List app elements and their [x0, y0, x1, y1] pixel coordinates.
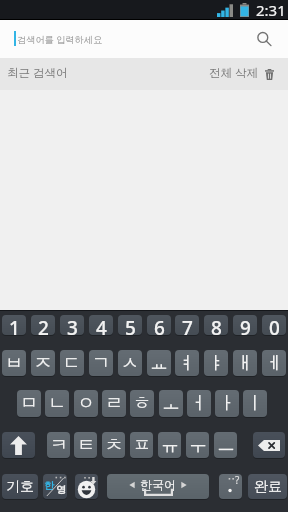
staticText: ㅑ [207, 352, 225, 375]
staticText: ㅠ [161, 434, 179, 457]
staticText: ㅇ [77, 392, 95, 415]
button[interactable]: ㅋ [47, 432, 70, 458]
staticText: 완료 [254, 478, 282, 496]
button[interactable]: ㄴ [45, 390, 69, 417]
staticText: 최근 검색어 [7, 65, 68, 81]
staticText: ㅈ [34, 352, 52, 375]
button[interactable]: ㅌ [74, 432, 97, 458]
button[interactable]: back [253, 432, 285, 458]
staticText: ㄱ [92, 352, 110, 375]
button[interactable]: shift [2, 432, 35, 458]
button[interactable]: ㅓ [187, 390, 211, 417]
staticText: 4 [96, 315, 107, 335]
button[interactable]: ㅍ [130, 432, 153, 458]
staticText: ㅁ [20, 392, 38, 415]
staticText: ㅂ [5, 352, 23, 375]
staticText: ㅔ [265, 352, 283, 375]
staticText: 8 [211, 315, 222, 335]
staticText: 2:31 [256, 0, 286, 20]
staticText: 영 [56, 483, 66, 496]
staticText: ㅊ [105, 434, 123, 457]
button[interactable]: ㅏ [215, 390, 239, 417]
button[interactable]: ㅗ [159, 390, 183, 417]
button[interactable]: ㅛ [147, 350, 171, 376]
staticText: ㅡ [217, 434, 235, 457]
button[interactable]: ㅁ [17, 390, 41, 417]
staticText: 9 [240, 315, 251, 335]
button[interactable]: ㅠ [158, 432, 181, 458]
button[interactable]: ㄹ [102, 390, 126, 417]
button[interactable]: ㅎ [130, 390, 154, 417]
button[interactable]: ㅡ [214, 432, 237, 458]
button[interactable]: ㅐ [233, 350, 257, 376]
staticText: ㅏ [218, 392, 236, 415]
staticText: ㅓ [190, 392, 208, 415]
staticText: 6 [154, 315, 165, 335]
button[interactable]: ㅈ [31, 350, 55, 376]
staticText: ㅣ [246, 392, 264, 415]
button[interactable]: 2 [31, 315, 55, 335]
staticText: ㅅ [121, 352, 139, 375]
staticText: ㄹ [105, 392, 123, 415]
staticText: ㅋ [50, 434, 68, 457]
button[interactable]: hanyoung [43, 474, 67, 499]
staticText: 한 [44, 479, 54, 492]
button[interactable]: emoji [75, 474, 98, 499]
button[interactable]: ㅜ [186, 432, 209, 458]
button[interactable]: ㄷ [60, 350, 84, 376]
button[interactable]: 1 [2, 315, 26, 335]
staticText: ㅌ [77, 434, 95, 457]
button[interactable]: 전체 삭제 [201, 66, 288, 82]
staticText: ㅎ [133, 392, 151, 415]
staticText: 2 [38, 315, 49, 335]
staticText: ㄷ [63, 352, 81, 375]
button[interactable]: ㅣ [243, 390, 267, 417]
button[interactable]: ㅂ [2, 350, 26, 376]
staticText: ㅐ [236, 352, 254, 375]
button[interactable]: space [107, 474, 209, 499]
staticText: 5 [125, 315, 136, 335]
staticText: ㅛ [150, 352, 168, 375]
staticText: 기호 [6, 478, 34, 496]
staticText: ㅗ [162, 392, 180, 415]
button[interactable]: 완료 [248, 474, 287, 499]
staticText: 0 [269, 315, 280, 335]
button[interactable]: 7 [175, 315, 199, 335]
staticText: ㅍ [133, 434, 151, 457]
staticText: 1 [9, 315, 20, 335]
staticText: ㄴ [48, 392, 66, 415]
button[interactable]: ㅕ [175, 350, 199, 376]
staticText: ? [235, 474, 240, 487]
staticText: ㅜ [189, 434, 207, 457]
button[interactable]: ㄱ [89, 350, 113, 376]
staticText: 검색어를 입력하세요 [17, 33, 103, 46]
button[interactable]: Search [242, 20, 288, 58]
staticText: 전체 삭제 [209, 65, 258, 81]
button[interactable]: 기호 [2, 474, 38, 499]
button[interactable]: 5 [118, 315, 142, 335]
button[interactable]: 3 [60, 315, 84, 335]
staticText: ㅕ [178, 352, 196, 375]
staticText: 7 [182, 315, 193, 335]
button[interactable]: ㅑ [204, 350, 228, 376]
staticText: 3 [67, 315, 78, 335]
button[interactable]: 8 [204, 315, 228, 335]
button[interactable]: 4 [89, 315, 113, 335]
button[interactable]: ㅊ [102, 432, 125, 458]
button[interactable]: period [219, 474, 242, 499]
button[interactable]: ㅔ [262, 350, 286, 376]
button[interactable]: ㅅ [118, 350, 142, 376]
button[interactable]: 0 [262, 315, 286, 335]
button[interactable]: 9 [233, 315, 257, 335]
staticText: 한국어 [140, 477, 176, 492]
button[interactable]: 6 [147, 315, 171, 335]
button[interactable]: ㅇ [74, 390, 98, 417]
